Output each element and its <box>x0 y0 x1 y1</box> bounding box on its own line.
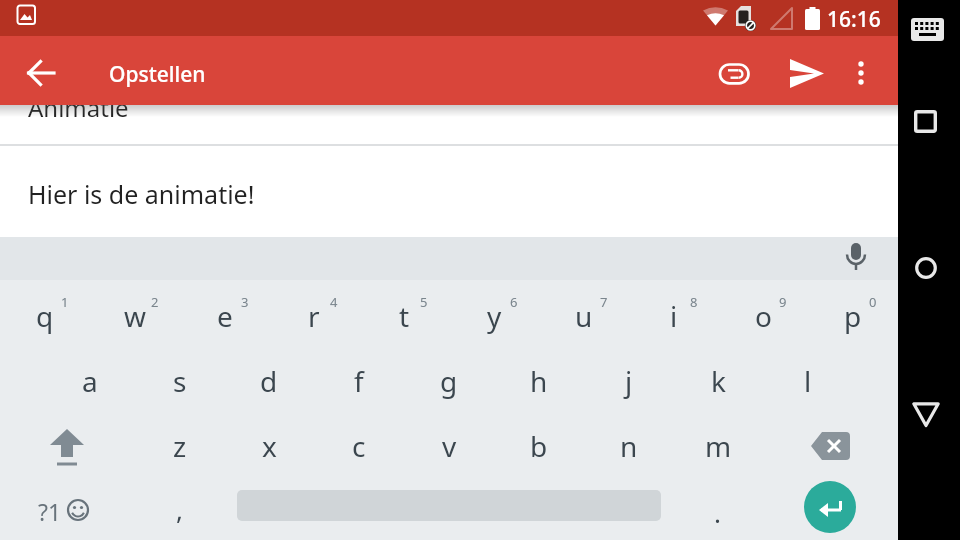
staticText: Animatie <box>28 91 129 124</box>
button[interactable] <box>50 429 84 467</box>
staticText: u <box>575 297 593 335</box>
button[interactable]: s <box>150 359 210 403</box>
button[interactable]: o <box>733 294 793 338</box>
staticText: g <box>440 362 458 400</box>
button[interactable] <box>719 63 751 85</box>
button[interactable] <box>912 402 940 428</box>
button[interactable]: m <box>688 424 748 468</box>
button[interactable]: h <box>509 359 569 403</box>
staticText: 9 <box>779 293 787 311</box>
button[interactable] <box>850 61 872 85</box>
staticText: y <box>487 297 502 335</box>
staticText: b <box>530 427 548 465</box>
staticText: 6 <box>510 293 518 311</box>
button[interactable]: r <box>284 294 344 338</box>
staticText: w <box>124 297 147 335</box>
staticText: e <box>217 297 233 335</box>
staticText: p <box>844 297 862 335</box>
button[interactable]: j <box>599 359 659 403</box>
button[interactable]: k <box>688 359 748 403</box>
staticText: r <box>308 297 320 335</box>
staticText: n <box>620 427 638 465</box>
button[interactable] <box>911 18 944 41</box>
button[interactable]: b <box>509 424 569 468</box>
button[interactable]: x <box>239 424 299 468</box>
button[interactable] <box>0 237 898 280</box>
staticText: h <box>530 362 548 400</box>
staticText: d <box>260 362 278 400</box>
staticText: s <box>173 362 187 400</box>
button[interactable] <box>810 431 852 461</box>
staticText: c <box>352 427 366 465</box>
button[interactable]: f <box>329 359 389 403</box>
staticText: v <box>442 427 457 465</box>
staticText: Opstellen <box>109 60 206 89</box>
staticText: 0 <box>869 293 877 311</box>
staticText: o <box>755 297 772 335</box>
staticText: m <box>705 427 732 465</box>
button[interactable] <box>914 110 937 133</box>
staticText: . <box>714 495 721 530</box>
staticText: , <box>176 492 183 527</box>
button[interactable]: l <box>778 359 838 403</box>
staticText: 2 <box>151 293 159 311</box>
staticText: 4 <box>330 293 338 311</box>
staticText: l <box>804 362 812 400</box>
staticText: i <box>670 297 678 335</box>
staticText: x <box>262 427 277 465</box>
staticText: f <box>354 362 364 400</box>
button[interactable]: a <box>60 359 120 403</box>
staticText: q <box>36 297 54 335</box>
button[interactable] <box>790 59 826 89</box>
button[interactable]: ?1 <box>38 496 62 527</box>
staticText: 3 <box>241 293 249 311</box>
button[interactable] <box>804 481 856 533</box>
button[interactable]: q <box>15 294 75 338</box>
staticText: j <box>625 362 633 400</box>
button[interactable]: p <box>823 294 883 338</box>
button[interactable]: , <box>149 487 209 531</box>
button[interactable]: w <box>105 294 165 338</box>
button[interactable]: g <box>419 359 479 403</box>
staticText: 7 <box>600 293 608 311</box>
staticText: k <box>711 362 726 400</box>
staticText: 16:16 <box>827 5 881 34</box>
button[interactable]: e <box>195 294 255 338</box>
staticText: 8 <box>690 293 698 311</box>
button[interactable] <box>28 60 55 86</box>
staticText: 1 <box>61 293 69 311</box>
staticText: a <box>82 362 98 400</box>
staticText: t <box>399 297 410 335</box>
staticText: 5 <box>420 293 428 311</box>
button[interactable] <box>915 257 937 279</box>
button[interactable]: d <box>239 359 299 403</box>
button[interactable]: v <box>419 424 479 468</box>
button[interactable]: z <box>150 424 210 468</box>
button[interactable]: t <box>374 294 434 338</box>
button[interactable]: y <box>464 294 524 338</box>
staticText: Hier is de animatie! <box>28 177 255 211</box>
button[interactable]: . <box>687 490 747 534</box>
staticText: z <box>173 427 187 465</box>
button[interactable]: c <box>329 424 389 468</box>
button[interactable]: u <box>554 294 614 338</box>
button[interactable]: n <box>599 424 659 468</box>
button[interactable]: i <box>644 294 704 338</box>
